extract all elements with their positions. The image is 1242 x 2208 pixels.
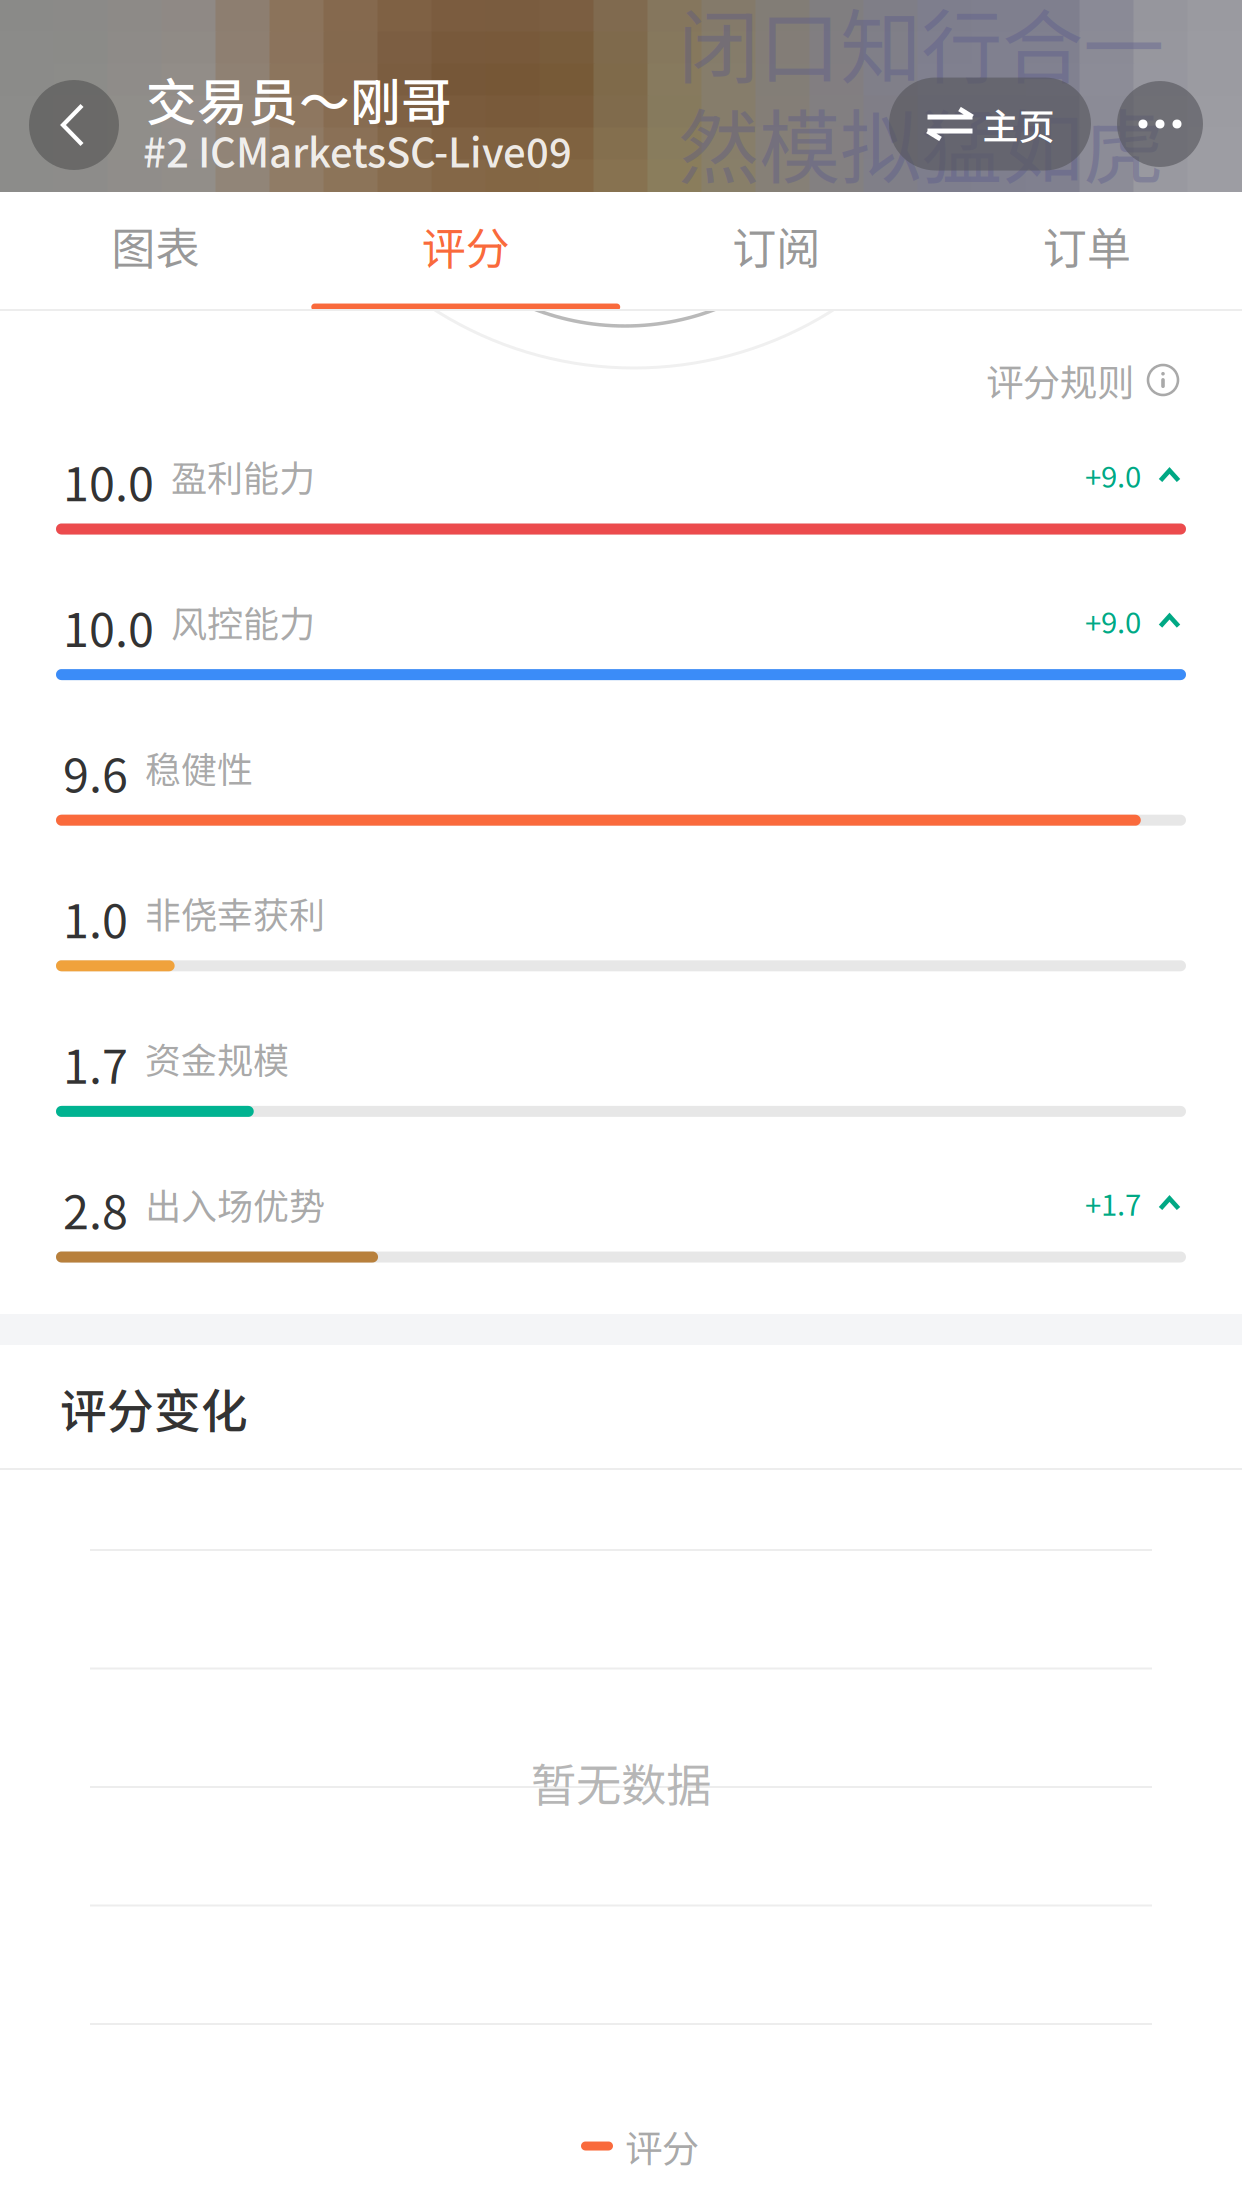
- button[interactable]: 评分规则: [958, 350, 1178, 410]
- staticText: #2 ICMarketsSC-Live09: [143, 121, 572, 179]
- button[interactable]: 评分: [310, 186, 621, 305]
- staticText: +9.0: [1085, 454, 1141, 496]
- staticText: 交易员～刚哥: [146, 62, 452, 136]
- staticText: 闭口知行合一: [678, 0, 1164, 101]
- staticText: 盈利能力: [171, 450, 315, 502]
- staticText: 订阅: [732, 214, 820, 277]
- staticText: 1.7: [63, 1030, 128, 1097]
- staticText: 10.0: [63, 593, 154, 660]
- button[interactable]: 订单: [931, 186, 1242, 305]
- staticText: 主页: [982, 98, 1054, 150]
- staticText: 暂无数据: [531, 1749, 711, 1815]
- button[interactable]: More options: [1117, 81, 1203, 167]
- staticText: 2.8: [63, 1175, 128, 1243]
- button[interactable]: 主页: [889, 77, 1091, 170]
- button[interactable]: Back: [29, 80, 119, 170]
- staticText: 评分规则: [986, 353, 1134, 407]
- staticText: +9.0: [1085, 599, 1141, 642]
- staticText: 非侥幸获利: [145, 887, 325, 939]
- staticText: 图表: [111, 214, 199, 277]
- staticText: 资金规模: [145, 1032, 289, 1084]
- staticText: 然模拟猛如虎: [678, 83, 1164, 201]
- staticText: 评分: [422, 214, 510, 277]
- staticText: 稳健性: [145, 741, 253, 793]
- staticText: 评分: [625, 2119, 699, 2173]
- staticText: 1.0: [63, 884, 128, 952]
- staticText: +1.7: [1085, 1182, 1141, 1224]
- staticText: 订单: [1043, 214, 1131, 277]
- staticText: 9.6: [63, 738, 128, 806]
- staticText: 评分变化: [60, 1374, 248, 1442]
- button[interactable]: 图表: [0, 186, 310, 305]
- staticText: 风控能力: [171, 595, 315, 648]
- staticText: 出入场优势: [145, 1178, 325, 1230]
- button[interactable]: 订阅: [621, 186, 931, 305]
- staticText: 10.0: [63, 447, 154, 515]
